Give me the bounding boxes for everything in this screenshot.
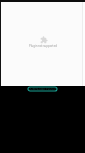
staticText: Plugin not supported: [29, 44, 57, 48]
button[interactable]: Get plugin: [28, 87, 57, 91]
staticText: DOWNLOAD PLUGIN: [28, 87, 57, 91]
